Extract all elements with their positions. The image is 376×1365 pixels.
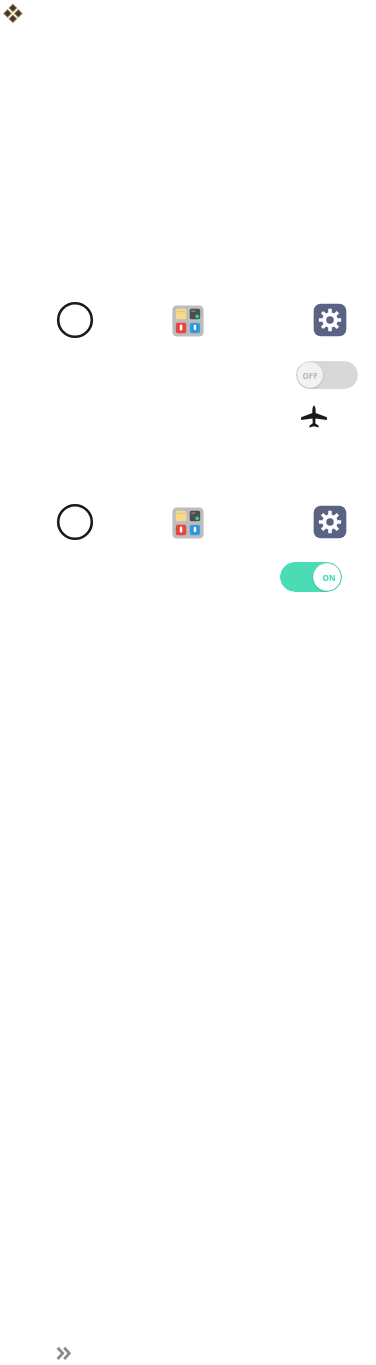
button[interactable]: Airplane mode on xyxy=(280,562,342,592)
button[interactable]: Home xyxy=(56,503,94,541)
staticText: ON xyxy=(319,572,339,583)
button[interactable]: Apps xyxy=(168,301,208,341)
button[interactable]: Airplane mode xyxy=(299,401,329,431)
button[interactable]: App logo xyxy=(2,3,28,29)
button[interactable]: Apps xyxy=(168,503,208,543)
staticText: OFF xyxy=(300,370,320,381)
button[interactable]: Settings xyxy=(311,301,349,339)
button[interactable]: Next xyxy=(54,1336,84,1364)
button[interactable]: Airplane mode off xyxy=(296,361,358,389)
button[interactable]: Settings xyxy=(311,503,349,541)
button[interactable]: Home xyxy=(56,301,94,339)
